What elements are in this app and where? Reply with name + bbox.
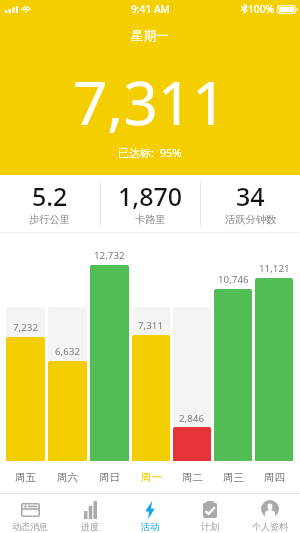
staticText: 周日 <box>99 471 120 484</box>
staticText: 活跃分钟数 <box>225 213 277 226</box>
staticText: 周二 <box>182 471 203 484</box>
staticText: 34 <box>236 179 265 213</box>
staticText: 进度 <box>81 521 99 532</box>
staticText: 10,746 <box>218 273 249 286</box>
staticText: 2,846 <box>179 412 205 425</box>
staticText: 周三 <box>223 471 244 484</box>
staticText: 6,632 <box>55 345 81 358</box>
other: Battery 100 percent <box>277 5 298 14</box>
staticText: 5.2 <box>32 179 68 213</box>
staticText: 计划 <box>201 521 219 532</box>
staticText: 100% <box>248 2 275 16</box>
button[interactable]: 周一 7,311 步 <box>132 235 170 485</box>
staticText: 周一 <box>141 471 162 484</box>
other: Bluetooth <box>241 4 247 13</box>
staticText: 星期一 <box>131 28 169 44</box>
button[interactable]: 个人资料 <box>240 494 300 533</box>
button[interactable]: 34 <box>201 175 300 232</box>
staticText: 1,870 <box>118 179 183 213</box>
staticText: 周五 <box>15 471 36 484</box>
staticText: 周六 <box>57 471 78 484</box>
staticText: 11,121 <box>259 262 290 275</box>
button[interactable]: 进度 <box>60 494 120 533</box>
button[interactable]: 活动 <box>120 494 180 533</box>
staticText: 卡路里 <box>135 213 166 226</box>
staticText: 7,311 <box>138 319 164 332</box>
other: Cellular signal <box>5 6 18 13</box>
staticText: 动态消息 <box>12 521 48 532</box>
staticText: 已达标: 95% <box>118 145 182 160</box>
staticText: 9:41 AM <box>131 2 170 16</box>
button[interactable]: 周二 2,846 步 <box>173 235 211 485</box>
button[interactable]: 动态消息 <box>0 494 60 533</box>
staticText: 个人资料 <box>252 521 288 532</box>
staticText: 12,732 <box>94 249 125 262</box>
button[interactable]: 周六 6,632 步 <box>48 235 87 485</box>
staticText: 活动 <box>141 521 159 532</box>
other: Wi-Fi <box>21 5 31 12</box>
button[interactable]: 周三 10,746 步 <box>214 235 252 485</box>
staticText: 周四 <box>264 471 285 484</box>
button[interactable]: 5.2 <box>0 175 100 232</box>
button[interactable]: 周五 7,232 步 <box>6 235 45 485</box>
staticText: 步行公里 <box>29 213 71 226</box>
button[interactable]: 周四 11,121 步 <box>255 235 293 485</box>
button[interactable]: 周日 12,732 步 <box>90 235 129 485</box>
staticText: 7,232 <box>13 321 39 334</box>
button[interactable]: 计划 <box>180 494 240 533</box>
staticText: 7,311 <box>73 61 227 143</box>
button[interactable]: 1,870 <box>101 175 200 232</box>
